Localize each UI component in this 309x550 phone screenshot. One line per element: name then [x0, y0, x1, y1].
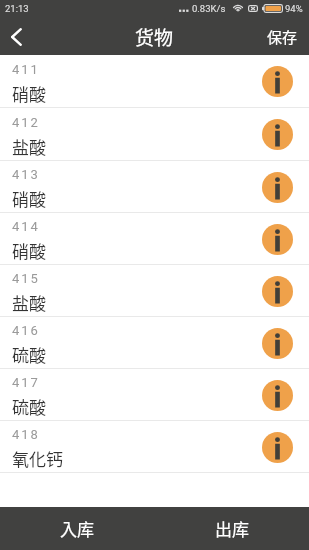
staticText: 0.83K/s	[192, 3, 226, 14]
staticText: 415	[12, 271, 40, 286]
button[interactable]: Info	[262, 432, 293, 463]
button[interactable]: 416	[0, 317, 309, 369]
staticText: 保存	[267, 26, 298, 48]
button[interactable]: Info	[262, 328, 293, 359]
staticText: 盐酸	[12, 134, 46, 159]
staticText: 硝酸	[12, 186, 46, 211]
button[interactable]: 出库	[154, 507, 309, 550]
staticText: 硫酸	[12, 342, 46, 367]
button[interactable]: 417	[0, 369, 309, 421]
button[interactable]: Info	[262, 380, 293, 411]
staticText: 418	[12, 427, 40, 442]
staticText: 417	[12, 375, 40, 390]
button[interactable]: Info	[262, 224, 293, 255]
button[interactable]: 保存	[255, 18, 309, 55]
button[interactable]: 414	[0, 213, 309, 265]
staticText: 21:13	[5, 3, 29, 14]
button[interactable]: 入库	[0, 507, 154, 550]
staticText: 硫酸	[12, 394, 46, 419]
button[interactable]: Info	[262, 66, 293, 97]
staticText: 416	[12, 323, 40, 338]
staticText: 入库	[60, 516, 94, 541]
staticText: 94%	[285, 3, 303, 14]
staticText: 盐酸	[12, 290, 46, 315]
button[interactable]: 411	[0, 55, 309, 108]
staticText: 412	[12, 115, 40, 130]
button[interactable]: Info	[262, 119, 293, 150]
staticText: 硝酸	[12, 81, 46, 106]
button[interactable]: 415	[0, 265, 309, 317]
staticText: 414	[12, 219, 40, 234]
button[interactable]: Back	[0, 18, 33, 55]
button[interactable]: 418	[0, 421, 309, 473]
button[interactable]: Info	[262, 172, 293, 203]
staticText: 货物	[135, 23, 174, 51]
staticText: 413	[12, 167, 40, 182]
staticText: 出库	[215, 516, 249, 541]
staticText: 氧化钙	[12, 446, 63, 471]
staticText: 硝酸	[12, 238, 46, 263]
button[interactable]: 413	[0, 161, 309, 213]
button[interactable]: Info	[262, 276, 293, 307]
staticText: 411	[12, 62, 40, 77]
button[interactable]: 412	[0, 108, 309, 161]
